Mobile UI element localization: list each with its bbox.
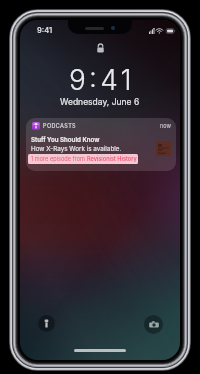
staticText: Wednesday, June 6 bbox=[60, 97, 140, 107]
button[interactable]: Camera bbox=[144, 315, 163, 334]
staticText: Stuff You Should Know bbox=[31, 136, 100, 144]
staticText: PODCASTS bbox=[43, 123, 76, 130]
staticText: 9:41 bbox=[37, 26, 53, 35]
staticText: now bbox=[160, 123, 171, 130]
staticText: Revisionist History bbox=[87, 156, 137, 163]
staticText: How X-Rays Work is available. bbox=[31, 145, 122, 153]
staticText: 1 more episode from bbox=[31, 156, 87, 163]
button[interactable]: PODCASTS bbox=[26, 118, 176, 171]
staticText: 9:41 bbox=[69, 63, 135, 97]
button[interactable]: Flashlight bbox=[38, 315, 55, 332]
